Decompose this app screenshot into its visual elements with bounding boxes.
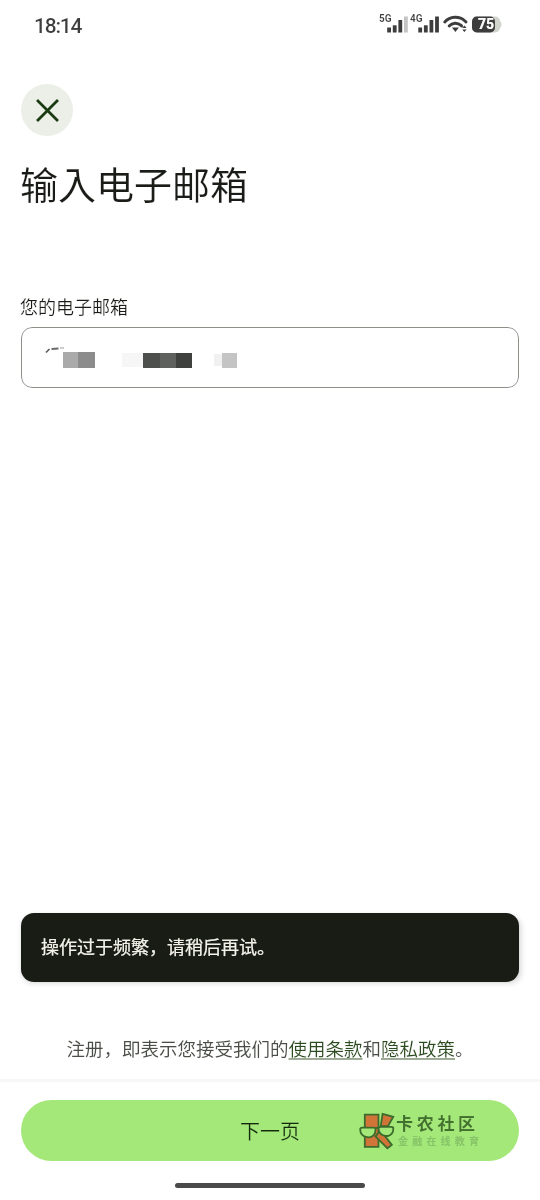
button[interactable] bbox=[21, 327, 519, 388]
staticText: 4G bbox=[410, 13, 423, 25]
staticText: 下一页 bbox=[240, 1116, 300, 1145]
button[interactable]: 下一页 bbox=[21, 1100, 519, 1161]
button[interactable]: Close bbox=[21, 84, 73, 136]
staticText: 您的电子邮箱 bbox=[20, 293, 128, 319]
staticText: 注册，即表示您接受我们的使用条款和隐私政策。 bbox=[66, 1035, 474, 1062]
staticText: 5G bbox=[379, 13, 392, 25]
staticText: 18:14 bbox=[34, 14, 82, 39]
staticText: 操作过于频繁，请稍后再试。 bbox=[41, 933, 275, 959]
staticText: 75 bbox=[478, 16, 495, 32]
staticText: 卡农社区 bbox=[396, 1110, 479, 1135]
staticText: 输入电子邮箱 bbox=[20, 155, 249, 210]
staticText: 金融在线教育 bbox=[398, 1133, 484, 1147]
